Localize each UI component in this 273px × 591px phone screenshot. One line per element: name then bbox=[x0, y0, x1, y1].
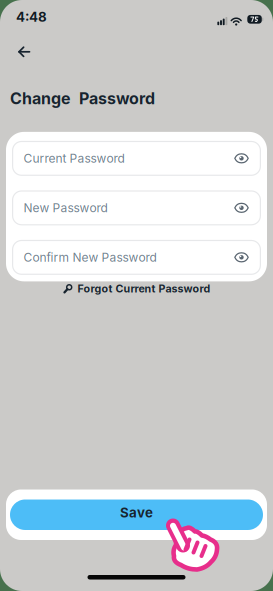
staticText: New Password bbox=[23, 201, 107, 215]
staticText: Forgot Current Password bbox=[77, 282, 210, 295]
button[interactable]: Current Password bbox=[12, 141, 261, 176]
button[interactable]: New Password bbox=[12, 190, 261, 225]
staticText: Confirm New Password bbox=[23, 250, 156, 264]
button[interactable]: Forgot Current Password bbox=[62, 282, 210, 295]
staticText: Change Password bbox=[10, 89, 155, 108]
button[interactable]: Show password bbox=[234, 202, 249, 214]
button[interactable]: Confirm New Password bbox=[12, 240, 261, 275]
button[interactable]: Save bbox=[10, 499, 263, 530]
button[interactable]: Show password bbox=[234, 252, 249, 263]
staticText: 4:48 bbox=[16, 9, 47, 25]
staticText: Current Password bbox=[23, 151, 124, 165]
staticText: Save bbox=[120, 505, 153, 521]
button[interactable]: Back bbox=[12, 42, 36, 62]
button[interactable]: Show password bbox=[234, 153, 249, 164]
